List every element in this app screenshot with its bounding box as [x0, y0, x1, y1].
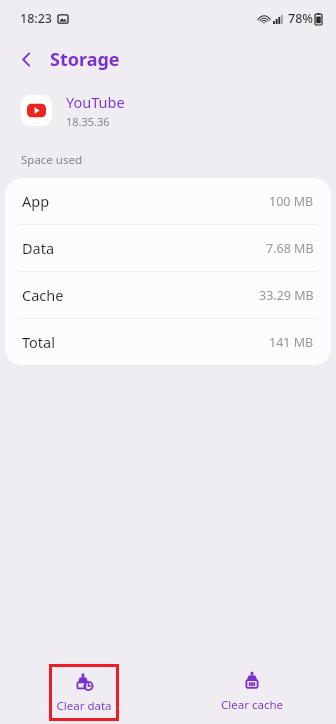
staticText: Total [22, 332, 55, 352]
staticText: Clear cache [221, 697, 283, 713]
staticText: 33.29 MB [259, 287, 314, 304]
button[interactable]: Cache [5, 272, 331, 319]
staticText: 78% [288, 10, 313, 27]
staticText: 7.68 MB [266, 240, 314, 257]
staticText: Cache [22, 285, 64, 305]
staticText: App [22, 191, 50, 211]
staticText: Clear data [56, 698, 112, 714]
button[interactable]: Back [8, 41, 44, 77]
button[interactable]: Clear cache [221, 671, 283, 713]
staticText: Data [22, 238, 55, 258]
staticText: 18.35.36 [66, 114, 110, 129]
button[interactable]: Total [5, 319, 331, 365]
staticText: 100 MB [269, 193, 314, 210]
staticText: 141 MB [269, 334, 314, 351]
button[interactable]: YouTube [0, 82, 336, 138]
button[interactable]: Data [5, 225, 331, 272]
staticText: YouTube [66, 92, 125, 112]
staticText: Storage [50, 47, 120, 72]
staticText: 18:23 [20, 10, 53, 27]
button[interactable]: App [5, 178, 331, 225]
staticText: Space used [21, 152, 83, 168]
button[interactable]: Clear data [56, 672, 112, 714]
